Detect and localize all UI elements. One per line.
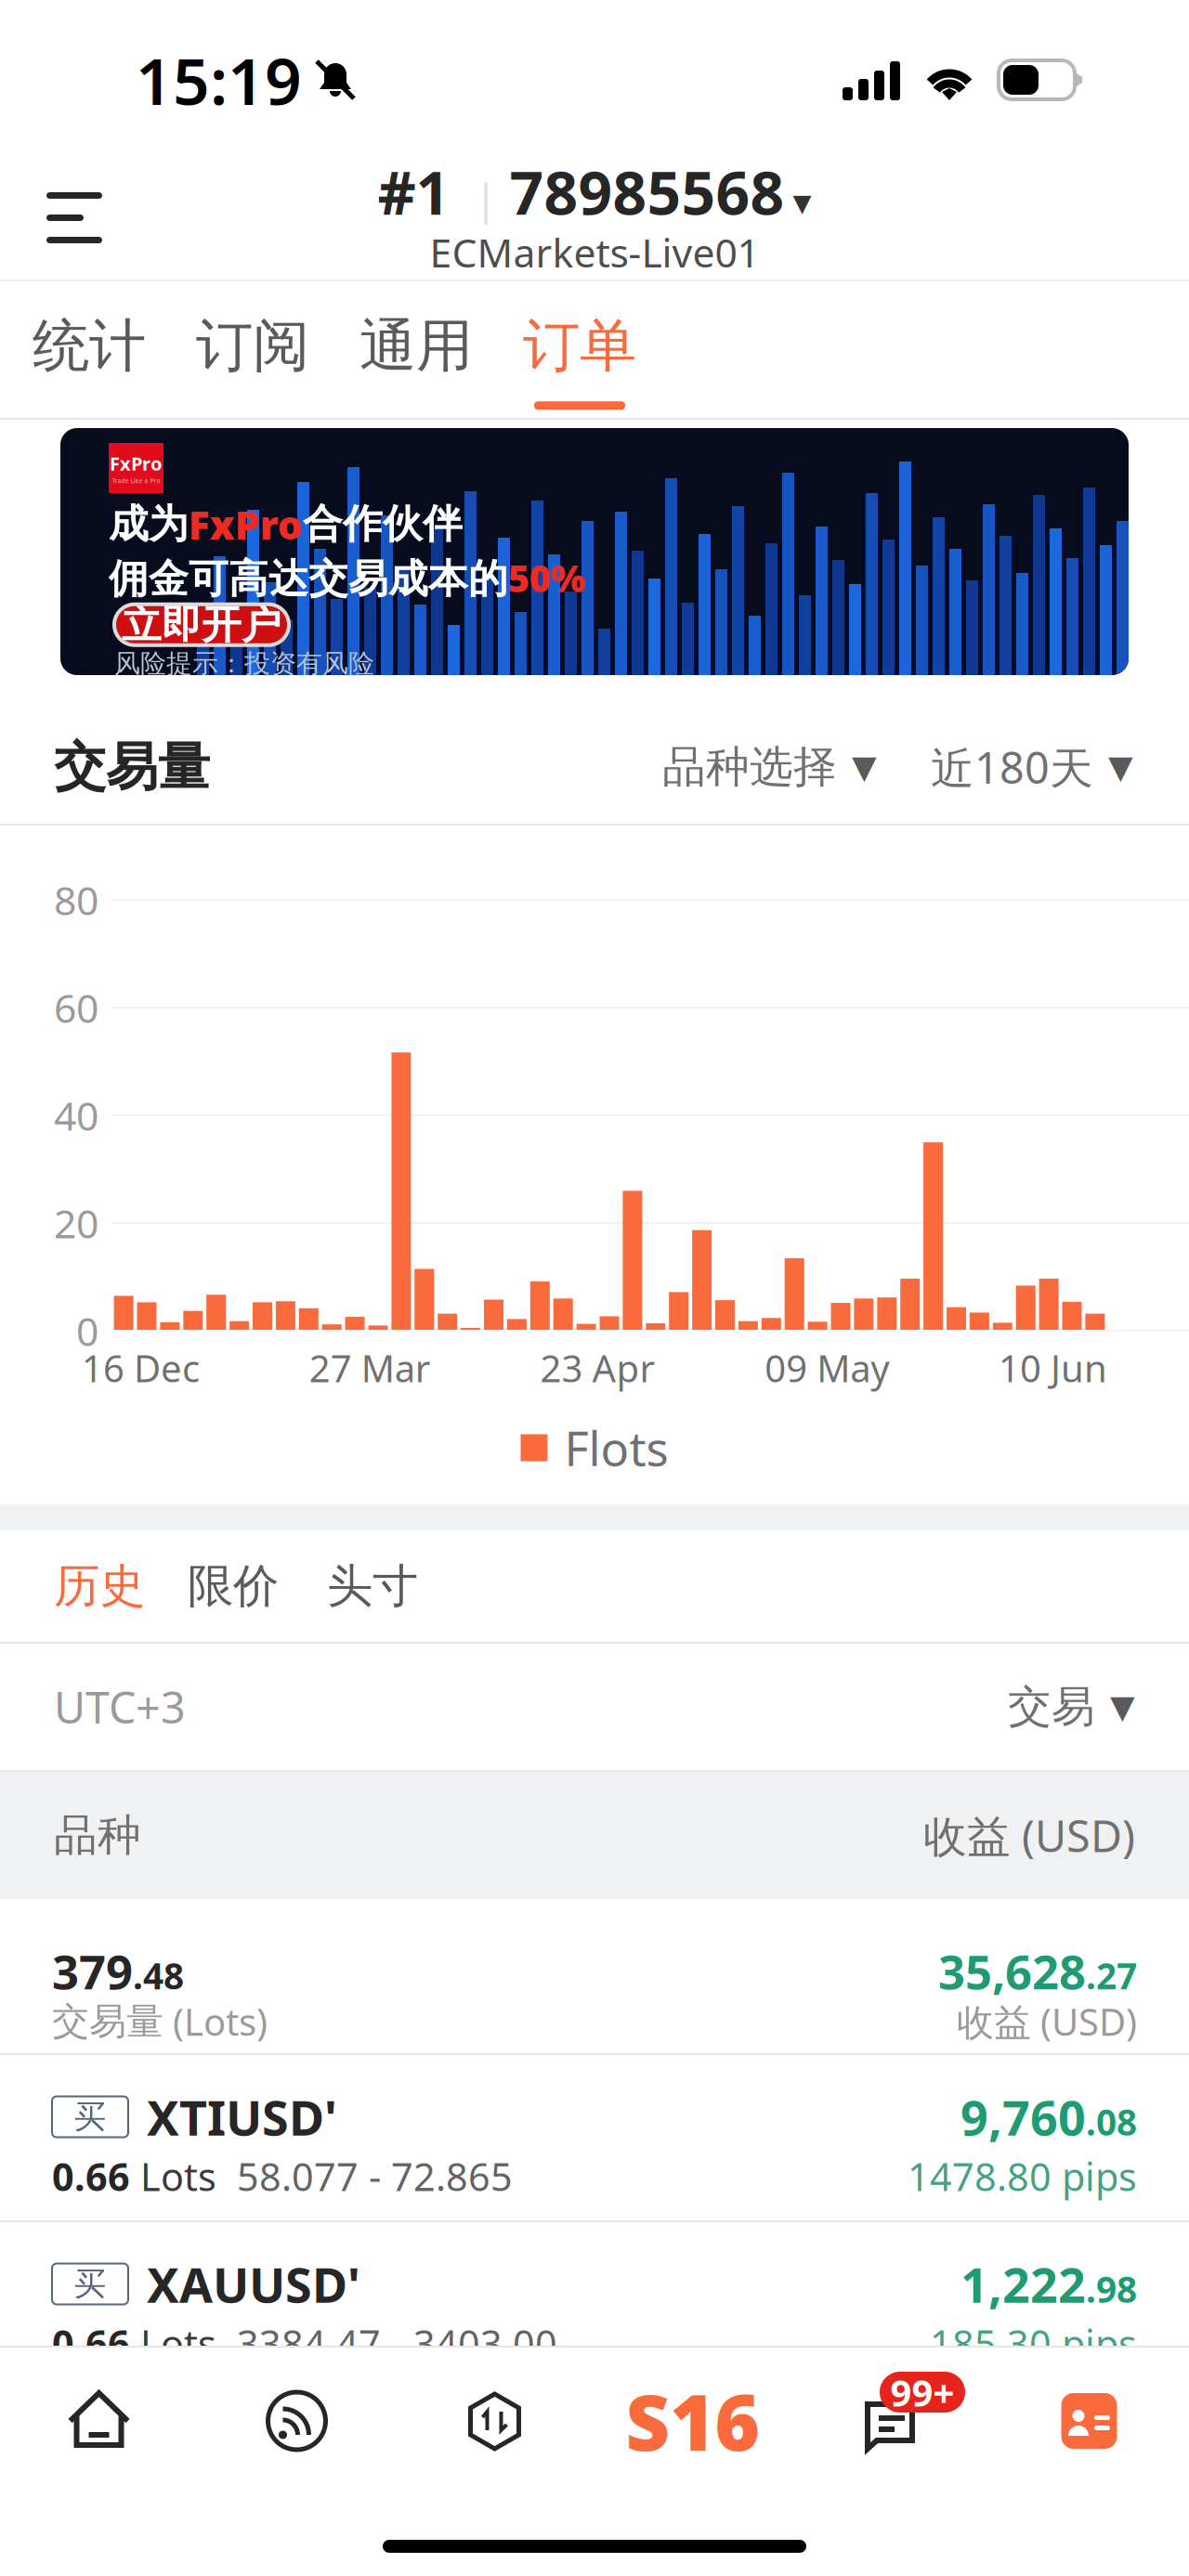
staticText: ▼ (852, 749, 877, 785)
button[interactable]: Signals (198, 2361, 396, 2481)
staticText: 风险提示：投资有风险 (114, 648, 374, 680)
staticText: 0.66 (52, 2318, 130, 2369)
staticText: 1,222 (960, 2252, 1086, 2316)
button[interactable]: 限价 (188, 1558, 279, 1614)
button[interactable]: Trade (396, 2361, 594, 2481)
staticText: 品种 (54, 1809, 141, 1862)
staticText: FxPro (189, 498, 303, 550)
staticText: 买 (74, 2264, 106, 2304)
staticText: 15:19 (136, 37, 302, 123)
staticText: Flots (564, 1417, 668, 1479)
staticText: 统计 (33, 311, 146, 381)
staticText: 限价 (188, 1558, 279, 1614)
button[interactable]: 头寸 (327, 1558, 418, 1614)
staticText: 09 May (765, 1343, 889, 1392)
staticText: S16 (626, 2370, 759, 2472)
button[interactable]: 买 (0, 2055, 1189, 2220)
staticText: 立即开户 (122, 600, 281, 649)
staticText: .48 (133, 1952, 184, 1999)
staticText: 10 Jun (999, 1343, 1107, 1392)
staticText: UTC+3 (54, 1678, 186, 1736)
button[interactable]: FxPro (60, 428, 1129, 675)
staticText: 3384.47 - 3403.00 (237, 2318, 557, 2369)
staticText: .27 (1086, 1952, 1137, 1999)
staticText: 379 (52, 1940, 133, 2002)
staticText: 60 (54, 981, 98, 1034)
staticText: 交易量 (54, 735, 210, 799)
button[interactable]: 通用 (334, 281, 498, 418)
staticText: ECMarkets-Live01 (430, 226, 759, 278)
staticText: ▼ (1110, 1689, 1135, 1725)
staticText: 0.66 (52, 2151, 130, 2202)
button[interactable]: Menu (0, 119, 154, 253)
staticText: 185.30 pips (930, 2318, 1137, 2369)
staticText: 订阅 (196, 311, 309, 381)
button[interactable]: S16 (594, 2361, 791, 2481)
staticText: 16 Dec (82, 1343, 200, 1392)
staticText: FxPro (110, 451, 163, 476)
staticText: .98 (1086, 2265, 1137, 2313)
button[interactable]: Profile (989, 2361, 1189, 2481)
staticText: 买 (74, 2097, 106, 2137)
staticText: .08 (1086, 2098, 1137, 2145)
staticText: 历史 (54, 1558, 145, 1614)
button[interactable]: 买 (0, 2222, 1189, 2387)
staticText: 品种选择 (662, 740, 837, 794)
staticText: 收益 (USD) (923, 1807, 1135, 1864)
staticText: XTIUSD' (147, 2085, 337, 2149)
staticText: 佣金可高达交易成本的 (109, 555, 508, 603)
staticText: XAUUSD' (147, 2252, 360, 2316)
button[interactable]: 订阅 (171, 281, 334, 418)
staticText: 50% (508, 553, 586, 602)
staticText: 0 (76, 1304, 98, 1357)
staticText: 80 (54, 874, 98, 926)
staticText: 58.077 - 72.865 (237, 2151, 513, 2202)
button[interactable]: #1 (269, 119, 920, 264)
staticText: Trade Like a Pro (112, 477, 160, 485)
staticText: 1478.80 pips (908, 2151, 1137, 2202)
staticText: 订单 (523, 311, 636, 381)
staticText: 23 Apr (540, 1343, 655, 1392)
staticText: ▼ (1108, 749, 1133, 785)
staticText: 通用 (359, 311, 473, 381)
staticText: #1 (378, 152, 450, 231)
staticText: | (474, 170, 497, 226)
staticText: 27 Mar (309, 1343, 431, 1392)
button[interactable]: Messages (791, 2361, 989, 2481)
button[interactable]: 交易 (1008, 1680, 1135, 1733)
button[interactable]: 统计 (7, 281, 171, 418)
staticText: 40 (54, 1089, 98, 1142)
staticText: 成为 (109, 500, 189, 548)
staticText: 20 (54, 1197, 98, 1249)
staticText: 35,628 (938, 1940, 1086, 2002)
staticText: 9,760 (960, 2085, 1086, 2149)
staticText: Lots (130, 2318, 237, 2369)
button[interactable]: Home (0, 2361, 198, 2481)
staticText: 78985568 (510, 152, 784, 231)
staticText: 合作伙伴 (303, 500, 463, 548)
staticText: 交易量 (52, 1999, 163, 2044)
staticText: 头寸 (327, 1558, 418, 1614)
staticText: 交易 (1008, 1680, 1095, 1733)
staticText: (Lots) (163, 1997, 268, 2046)
button[interactable]: 历史 (54, 1558, 145, 1614)
staticText: 收益 (USD) (957, 1997, 1137, 2046)
staticText: Lots (130, 2151, 237, 2202)
staticText: ▾ (793, 181, 811, 223)
button[interactable]: 品种选择 (662, 740, 877, 794)
staticText: 99+ (890, 2367, 954, 2417)
button[interactable]: 近180天 (931, 738, 1133, 796)
button[interactable]: 订单 (498, 281, 661, 418)
staticText: 近180天 (931, 738, 1093, 796)
